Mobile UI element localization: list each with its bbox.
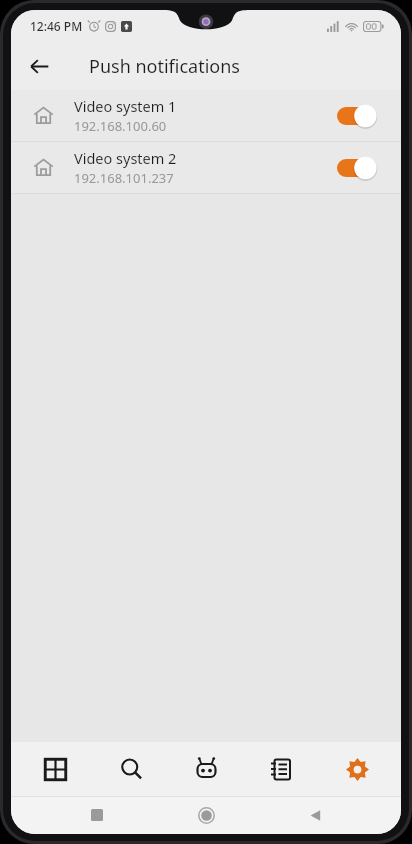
button[interactable]: Video system 2 <box>11 142 401 193</box>
staticText: Video system 2 <box>74 148 177 168</box>
button[interactable]: Search <box>100 742 162 796</box>
button[interactable]: Video system 1 <box>11 90 401 141</box>
staticText: Video system 1 <box>74 96 177 116</box>
button[interactable]: Toggle push notifications <box>337 154 385 182</box>
button[interactable]: Recents <box>74 796 120 834</box>
staticText: 192.168.100.60 <box>74 117 167 135</box>
button[interactable]: Logs <box>250 742 312 796</box>
button[interactable]: Home <box>183 796 229 834</box>
button[interactable]: Devices <box>175 742 237 796</box>
button[interactable]: Back <box>19 46 59 86</box>
staticText: 192.168.101.237 <box>74 169 174 187</box>
button[interactable]: Settings <box>326 742 388 796</box>
staticText: Push notifications <box>89 54 240 79</box>
staticText: 12:46 PM <box>30 18 83 34</box>
button[interactable]: Dashboard <box>24 742 86 796</box>
button[interactable]: Toggle push notifications <box>337 102 385 130</box>
button[interactable]: Back <box>292 796 338 834</box>
